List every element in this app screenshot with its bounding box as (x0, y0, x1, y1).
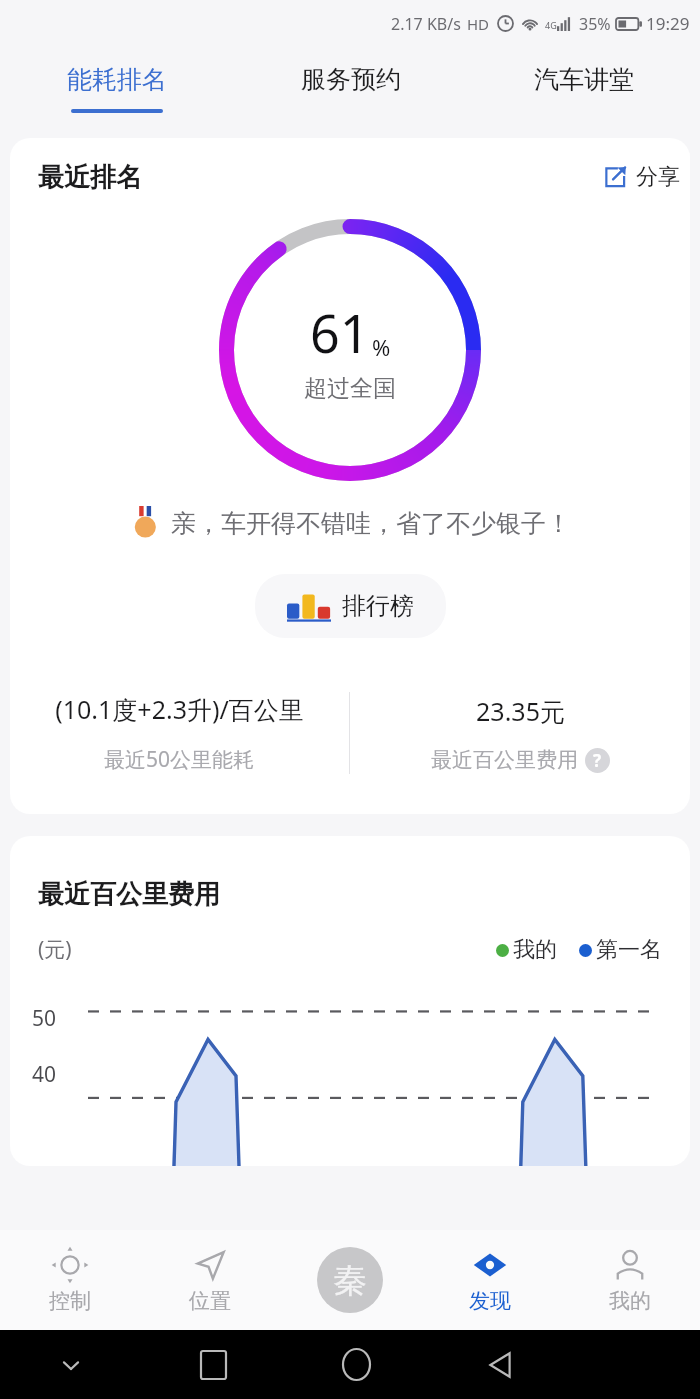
staticText: 位置 (189, 1288, 231, 1314)
button[interactable]: Back (428, 1330, 571, 1399)
staticText: ? (593, 749, 602, 772)
staticText: 40 (32, 1060, 57, 1089)
button[interactable]: 我的 (560, 1230, 700, 1330)
button[interactable]: Qin (280, 1230, 420, 1330)
button[interactable]: Hide keyboard (0, 1330, 142, 1399)
staticText: 能耗排名 (67, 64, 167, 95)
button[interactable]: 排行榜 (255, 574, 446, 638)
button[interactable]: 汽车讲堂 (467, 46, 700, 130)
button[interactable]: 服务预约 (234, 46, 467, 130)
staticText: 4G (545, 19, 557, 31)
staticText: 第一名 (596, 936, 662, 964)
staticText: 分享 (636, 163, 680, 191)
staticText: 亲，车开得不错哇，省了不少银子！ (171, 508, 571, 539)
button[interactable]: 能耗排名 (0, 46, 234, 130)
staticText: 控制 (49, 1288, 91, 1314)
button[interactable]: Help (585, 748, 610, 773)
staticText: 35% (579, 13, 611, 35)
staticText: 秦 (333, 1259, 367, 1302)
button[interactable]: Recents (142, 1330, 285, 1399)
staticText: 23.35元 (476, 694, 565, 728)
staticText: HD (467, 14, 490, 34)
staticText: 19:29 (646, 12, 690, 35)
staticText: 最近百公里费用 (38, 878, 220, 911)
other: Share (603, 165, 627, 189)
button[interactable]: 位置 (140, 1230, 280, 1330)
staticText: 61 (310, 297, 370, 368)
staticText: 超过全国 (304, 374, 396, 403)
staticText: 2.17 KB/s (391, 13, 461, 35)
button[interactable]: Share (583, 152, 690, 202)
staticText: (10.1度+2.3升)/百公里 (55, 692, 304, 726)
staticText: 最近排名 (38, 161, 142, 194)
staticText: 最近百公里费用 (431, 747, 578, 773)
staticText: 汽车讲堂 (534, 64, 634, 95)
button[interactable]: Home (285, 1330, 428, 1399)
button[interactable]: 控制 (0, 1230, 140, 1330)
staticText: 最近50公里能耗 (104, 745, 255, 774)
staticText: 排行榜 (342, 591, 414, 621)
staticText: 50 (32, 1004, 57, 1033)
button[interactable]: 发现 (420, 1230, 560, 1330)
staticText: 发现 (469, 1288, 511, 1314)
staticText: 我的 (609, 1288, 651, 1314)
staticText: 我的 (513, 936, 557, 964)
staticText: 服务预约 (301, 64, 401, 95)
staticText: (元) (38, 935, 72, 964)
staticText: % (372, 332, 391, 362)
